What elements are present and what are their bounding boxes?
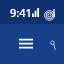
button[interactable]: Search: [50, 26, 56, 62]
button[interactable]: Menu: [8, 26, 44, 62]
staticText: 9:41: [10, 5, 32, 20]
